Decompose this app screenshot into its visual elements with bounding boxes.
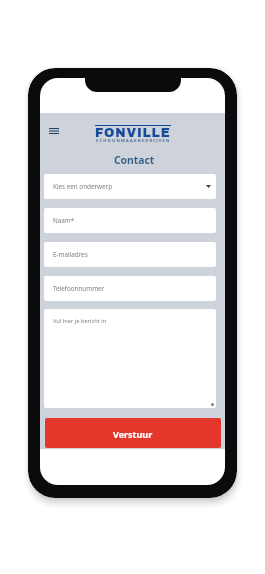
button[interactable]: E-mailadres bbox=[44, 242, 216, 267]
staticText: Vul hier je bericht in bbox=[53, 317, 107, 325]
button[interactable]: Naam* bbox=[44, 208, 216, 233]
staticText: Naam* bbox=[53, 216, 75, 225]
button[interactable]: Telefoonnummer bbox=[44, 276, 216, 301]
staticText: Kies een onderwerp bbox=[53, 182, 113, 191]
staticText: FONVILLE bbox=[95, 126, 171, 140]
button[interactable]: Vul hier je bericht in bbox=[44, 309, 216, 408]
staticText: SCHOONMAAKBEDRIJVEN bbox=[96, 138, 171, 143]
staticText: Contact bbox=[114, 153, 155, 167]
button[interactable]: Kies een onderwerp bbox=[44, 174, 216, 199]
staticText: E-mailadres bbox=[53, 250, 88, 259]
staticText: Telefoonnummer bbox=[53, 284, 105, 293]
staticText: Verstuur bbox=[113, 428, 153, 440]
button[interactable]: Menu bbox=[43, 121, 64, 141]
button[interactable]: Verstuur bbox=[45, 418, 221, 448]
